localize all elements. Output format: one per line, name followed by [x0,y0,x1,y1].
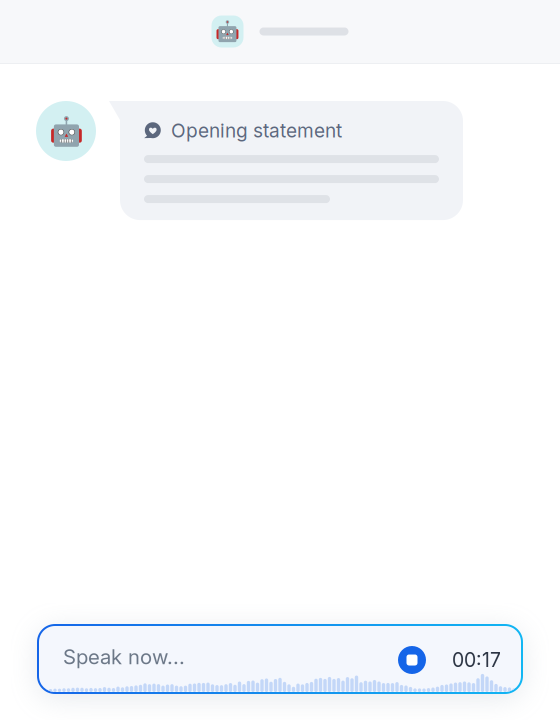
button[interactable]: Stop recording [395,643,429,677]
staticText: Speak now... [63,645,185,669]
staticText: 🤖 [48,115,83,147]
staticText: 🤖 [215,20,240,43]
staticText: 00:17 [452,648,501,672]
staticText: Opening statement [171,119,342,142]
button[interactable]: Assistant [211,15,243,47]
